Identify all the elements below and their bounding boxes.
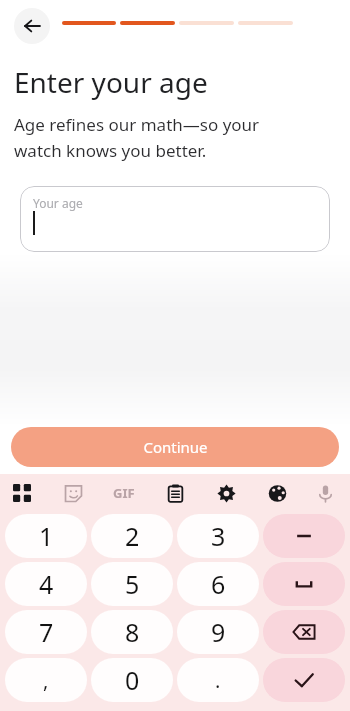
staticText: . [215, 667, 221, 694]
button[interactable]: 8 [91, 610, 173, 654]
button[interactable]: Backspace [263, 610, 345, 654]
staticText: Continue [143, 437, 208, 457]
button[interactable]: Keyboard tool [209, 476, 243, 510]
staticText: Enter your age [14, 63, 208, 101]
button[interactable]: 5 [91, 562, 173, 606]
staticText: 8 [125, 615, 140, 649]
staticText: Age refines our math—so your watch knows… [14, 113, 260, 162]
button[interactable]: Keyboard tool [308, 476, 342, 510]
staticText: GIF [113, 484, 135, 502]
button[interactable]: 6 [177, 562, 259, 606]
button[interactable]: 1 [5, 514, 87, 558]
button[interactable]: , [5, 658, 87, 702]
button[interactable]: . [177, 658, 259, 702]
button[interactable]: Keyboard tool [5, 476, 39, 510]
button[interactable]: Keyboard tool [158, 476, 192, 510]
staticText: 0 [125, 663, 140, 697]
staticText: 5 [125, 567, 140, 601]
button[interactable]: 0 [91, 658, 173, 702]
button[interactable]: Keyboard tool [107, 476, 141, 510]
button[interactable]: Your age [20, 186, 330, 252]
button[interactable]: Back [14, 8, 50, 44]
staticText: 1 [39, 519, 54, 553]
staticText: 2 [125, 519, 140, 553]
button[interactable]: Done [263, 658, 345, 702]
button[interactable]: 4 [5, 562, 87, 606]
button[interactable]: 2 [91, 514, 173, 558]
button[interactable]: Keyboard tool [260, 476, 294, 510]
staticText: Your age [33, 195, 83, 211]
staticText: , [43, 667, 49, 694]
button[interactable]: Space [263, 562, 345, 606]
button[interactable]: Minus [263, 514, 345, 558]
button[interactable]: 3 [177, 514, 259, 558]
staticText: 3 [211, 519, 226, 553]
staticText: 6 [211, 567, 226, 601]
button[interactable]: 7 [5, 610, 87, 654]
staticText: 4 [39, 567, 54, 601]
button[interactable]: Keyboard tool [56, 476, 90, 510]
button[interactable]: Continue [11, 427, 339, 467]
button[interactable]: 9 [177, 610, 259, 654]
staticText: 9 [211, 615, 226, 649]
staticText: 7 [39, 615, 54, 649]
